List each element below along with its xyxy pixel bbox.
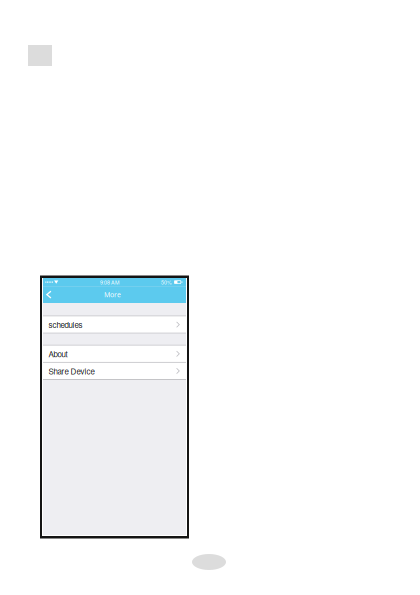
staticText: 9:08 AM — [100, 278, 119, 286]
staticText: More — [104, 290, 121, 299]
staticText: Share Device — [48, 365, 94, 377]
button[interactable]: About — [43, 346, 186, 362]
button[interactable]: Share Device — [43, 363, 186, 379]
staticText: 50% — [161, 278, 172, 286]
button[interactable]: schedules — [43, 316, 186, 333]
staticText: schedules — [48, 319, 82, 330]
staticText: About — [48, 348, 67, 360]
button[interactable]: Back — [43, 286, 59, 303]
